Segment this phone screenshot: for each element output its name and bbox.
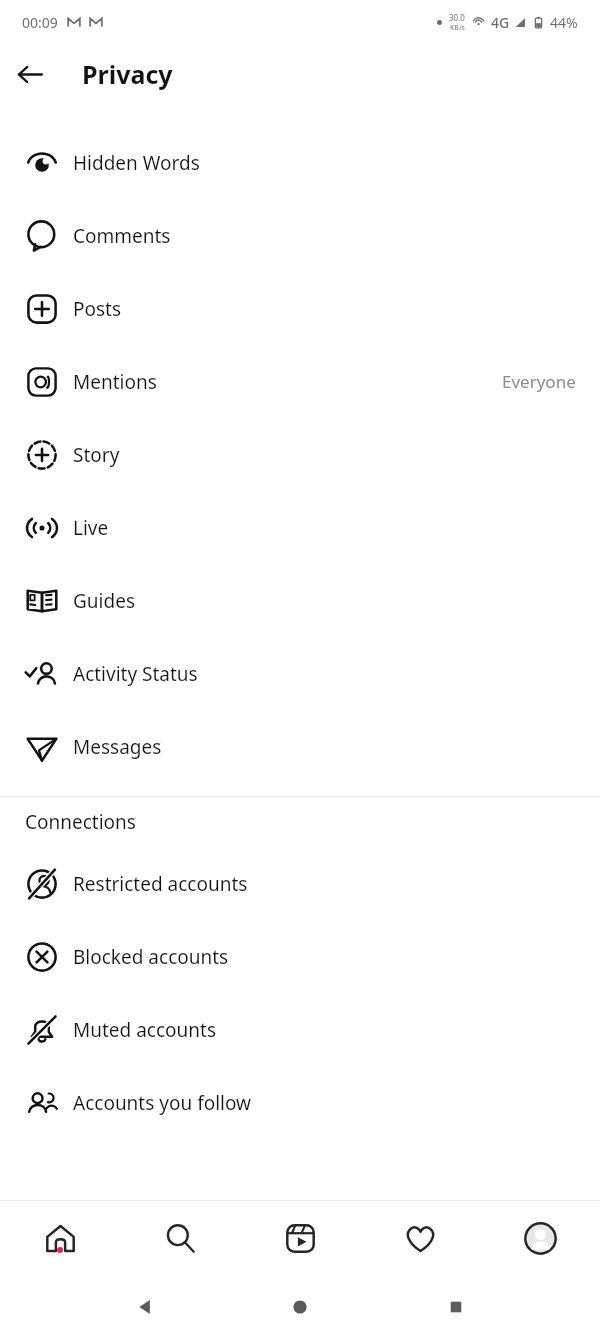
button[interactable]: Comments — [0, 199, 600, 272]
button[interactable]: Story — [0, 418, 600, 491]
staticText: Blocked accounts — [73, 944, 229, 970]
button[interactable]: Search — [120, 1201, 240, 1276]
staticText: Hidden Words — [73, 150, 200, 176]
button[interactable]: Activity Status — [0, 637, 600, 710]
staticText: Comments — [73, 223, 171, 249]
button[interactable]: Reels — [240, 1201, 360, 1276]
staticText: Live — [73, 515, 109, 541]
button[interactable]: Home — [0, 1201, 120, 1276]
button[interactable]: Activity — [360, 1201, 480, 1276]
button[interactable]: Muted accounts — [0, 993, 600, 1066]
staticText: Activity Status — [73, 661, 198, 687]
staticText: Restricted accounts — [73, 871, 248, 897]
staticText: Messages — [73, 734, 162, 760]
staticText: Privacy — [82, 57, 173, 91]
button[interactable]: Back — [0, 44, 60, 104]
staticText: 30.0 — [449, 12, 465, 23]
button[interactable]: Accounts you follow — [0, 1066, 600, 1139]
staticText: 00:09 — [22, 13, 58, 32]
staticText: KB/s — [450, 23, 465, 33]
button[interactable]: Messages — [0, 710, 600, 783]
staticText: Story — [73, 442, 120, 468]
button[interactable]: Live — [0, 491, 600, 564]
button[interactable]: Hidden Words — [0, 126, 600, 199]
button[interactable]: Restricted accounts — [0, 847, 600, 920]
staticText: Muted accounts — [73, 1017, 217, 1043]
button[interactable]: Blocked accounts — [0, 920, 600, 993]
button[interactable]: Posts — [0, 272, 600, 345]
staticText: Connections — [25, 809, 136, 835]
staticText: 44% — [550, 13, 578, 32]
button[interactable]: Profile — [480, 1201, 600, 1276]
button[interactable]: Mentions — [0, 345, 600, 418]
staticText: Posts — [73, 296, 122, 322]
staticText: Accounts you follow — [73, 1090, 252, 1116]
staticText: Mentions — [73, 369, 157, 395]
staticText: 4G — [491, 13, 510, 32]
staticText: Everyone — [502, 370, 576, 393]
button[interactable]: Guides — [0, 564, 600, 637]
staticText: Guides — [73, 588, 135, 614]
